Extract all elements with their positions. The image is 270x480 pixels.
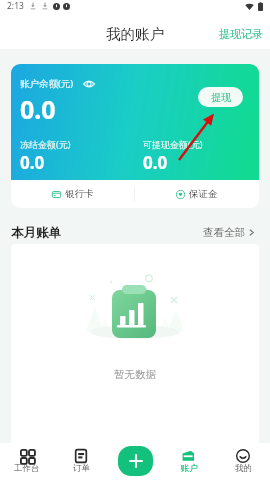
button[interactable]: 账户 [162, 443, 216, 480]
button[interactable]: 提现 [198, 87, 243, 107]
staticText: 本月账单 [11, 225, 61, 241]
staticText: 我的 [235, 463, 252, 474]
staticText: 暂无数据 [114, 368, 156, 381]
button[interactable]: 我的 [216, 443, 270, 480]
staticText: 提现 [211, 91, 231, 104]
button[interactable]: 保证金 [135, 180, 259, 208]
staticText: 我的账户 [106, 25, 164, 43]
button[interactable]: 银行卡 [11, 180, 134, 208]
staticText: 可提现金额(元) [143, 138, 203, 150]
staticText: 账户 [181, 463, 198, 474]
staticText: 2:13 [7, 0, 24, 12]
staticText: 订单 [73, 463, 90, 474]
staticText: 查看全部 [203, 226, 245, 239]
staticText: 0.0 [20, 92, 56, 126]
button[interactable]: 订单 [54, 443, 108, 480]
staticText: 保证金 [189, 188, 218, 200]
staticText: 冻结金额(元) [20, 138, 71, 150]
button[interactable]: Toggle balance visibility [83, 79, 95, 89]
staticText: 0.0 [20, 151, 45, 174]
button[interactable]: 查看全部 [193, 221, 270, 244]
staticText: 0.0 [143, 151, 168, 174]
staticText: 提现记录 [219, 27, 263, 41]
button[interactable]: 工作台 [0, 443, 54, 480]
staticText: 账户余额(元) [20, 77, 74, 90]
staticText: 银行卡 [65, 188, 94, 200]
button[interactable]: 提现记录 [209, 21, 270, 47]
staticText: 工作台 [14, 463, 40, 474]
button[interactable]: Add [118, 446, 153, 476]
